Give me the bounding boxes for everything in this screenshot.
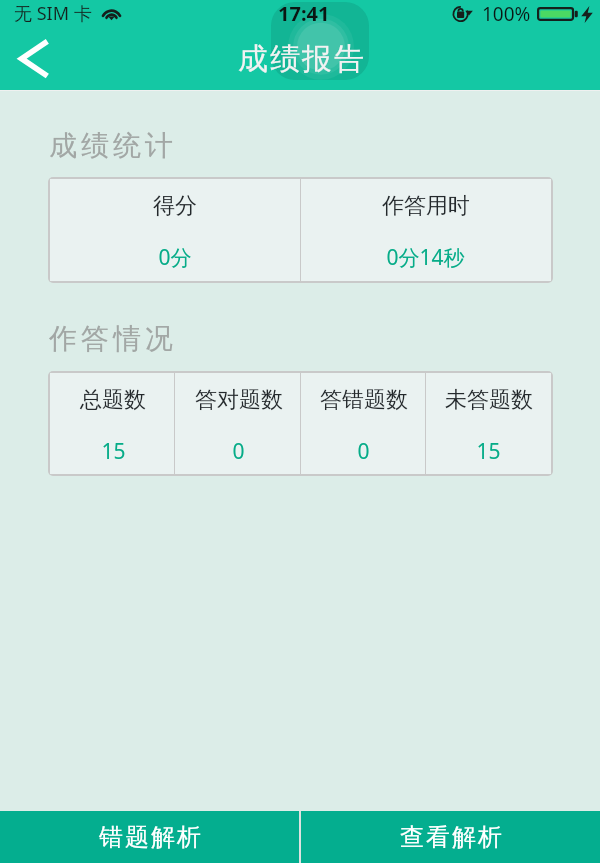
staticText: 无 SIM 卡 <box>14 1 92 26</box>
button[interactable]: Back <box>8 30 64 86</box>
staticText: 0分14秒 <box>386 243 465 272</box>
button[interactable]: 答对题数 <box>176 373 301 474</box>
staticText: 100% <box>482 1 531 27</box>
button[interactable]: 总题数 <box>50 373 176 474</box>
staticText: 0 <box>232 437 245 466</box>
button[interactable]: 未答题数 <box>426 373 551 474</box>
staticText: 得分 <box>153 192 197 220</box>
staticText: 成绩统计 <box>47 128 175 163</box>
staticText: 0 <box>357 437 370 466</box>
button[interactable]: 作答用时 <box>300 179 551 281</box>
staticText: 答错题数 <box>320 386 408 414</box>
staticText: 答对题数 <box>195 386 283 414</box>
staticText: 0分 <box>158 243 192 272</box>
staticText: 未答题数 <box>445 386 533 414</box>
staticText: 错题解析 <box>98 822 202 852</box>
button[interactable]: 得分 <box>50 179 300 281</box>
staticText: 查看解析 <box>399 822 503 852</box>
staticText: 作答情况 <box>47 321 175 356</box>
staticText: 作答用时 <box>382 192 470 220</box>
staticText: 总题数 <box>80 386 146 414</box>
button[interactable]: 查看解析 <box>301 811 600 863</box>
button[interactable]: 答错题数 <box>301 373 426 474</box>
staticText: 成绩报告 <box>237 40 365 78</box>
staticText: 15 <box>476 437 501 466</box>
staticText: 17:41 <box>278 0 330 27</box>
staticText: 15 <box>101 437 126 466</box>
button[interactable]: 错题解析 <box>0 811 299 863</box>
